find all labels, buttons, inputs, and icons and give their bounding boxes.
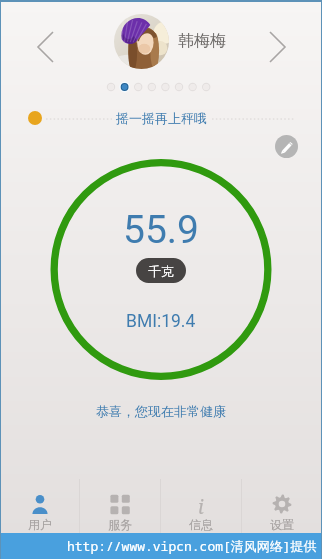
staticText: BMI:19.4 [126,311,196,332]
staticText: 摇一摇再上秤哦 [116,110,207,126]
button[interactable]: User avatar [114,14,169,69]
staticText: http://www.vipcn.com[清风网络]提供 [67,537,317,555]
staticText: 千克 [148,263,174,279]
button[interactable]: Next user [260,25,294,69]
staticText: i [198,494,204,514]
button[interactable]: 设置 [242,479,322,533]
button[interactable]: Edit [275,135,298,158]
button[interactable]: 千克 [136,258,186,283]
staticText: 设置 [270,517,294,532]
button[interactable]: i [161,479,241,533]
button[interactable]: 用户 [0,479,79,533]
button[interactable]: 摇一摇再上秤哦 [110,108,212,128]
button[interactable]: 服务 [80,479,160,533]
staticText: 信息 [189,517,213,532]
staticText: 恭喜，您现在非常健康 [96,403,226,419]
staticText: 55.9 [123,207,200,253]
staticText: 用户 [28,517,52,532]
staticText: 服务 [108,517,132,532]
button[interactable]: Previous user [28,25,62,69]
staticText: 韩梅梅 [178,31,226,51]
